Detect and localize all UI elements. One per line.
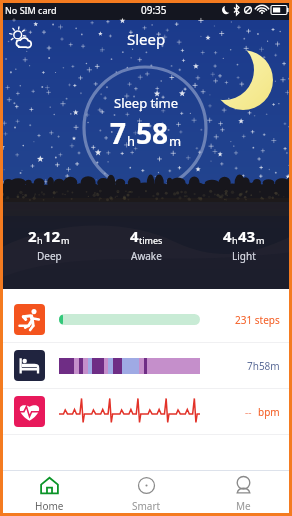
staticText: 43 [238, 226, 256, 246]
button[interactable]: Heart rate [0, 389, 292, 434]
staticText: h [127, 132, 136, 150]
button[interactable]: 4 [195, 226, 292, 263]
staticText: times [139, 234, 163, 246]
button[interactable]: Home [0, 471, 98, 513]
staticText: 09:35 [141, 3, 167, 17]
staticText: 4 [223, 226, 232, 246]
button[interactable]: 4 [98, 226, 195, 263]
staticText: Me [236, 499, 251, 513]
other: Heart rate [14, 396, 45, 427]
staticText: Smart [132, 499, 161, 513]
staticText: 12 [43, 226, 61, 246]
staticText: h [37, 234, 43, 246]
staticText: 58 [136, 114, 169, 152]
button[interactable]: 2 [0, 226, 98, 263]
staticText: h [232, 234, 238, 246]
other: Sleep [14, 350, 45, 381]
staticText: bpm [258, 405, 280, 419]
staticText: Sleep [127, 29, 166, 49]
staticText: Awake [131, 249, 162, 263]
other: Steps [14, 304, 45, 335]
staticText: No SIM card [5, 4, 57, 16]
button[interactable]: Weather [8, 26, 35, 53]
staticText: Deep [37, 249, 62, 263]
button[interactable]: Me [195, 471, 292, 513]
staticText: m [61, 234, 70, 246]
staticText: 7h58m [247, 359, 280, 373]
button[interactable]: Sleep [0, 343, 292, 388]
button[interactable]: Steps [0, 297, 292, 342]
staticText: 4 [130, 226, 139, 246]
staticText: 2 [28, 226, 37, 246]
staticText: Light [232, 249, 256, 263]
staticText: -- [245, 405, 252, 419]
staticText: Home [35, 499, 64, 513]
staticText: 231 steps [235, 313, 280, 327]
button[interactable]: Smart [98, 471, 195, 513]
staticText: m [169, 132, 182, 150]
staticText: m [256, 234, 265, 246]
staticText: Sleep time [114, 94, 179, 112]
staticText: 7 [110, 114, 127, 152]
